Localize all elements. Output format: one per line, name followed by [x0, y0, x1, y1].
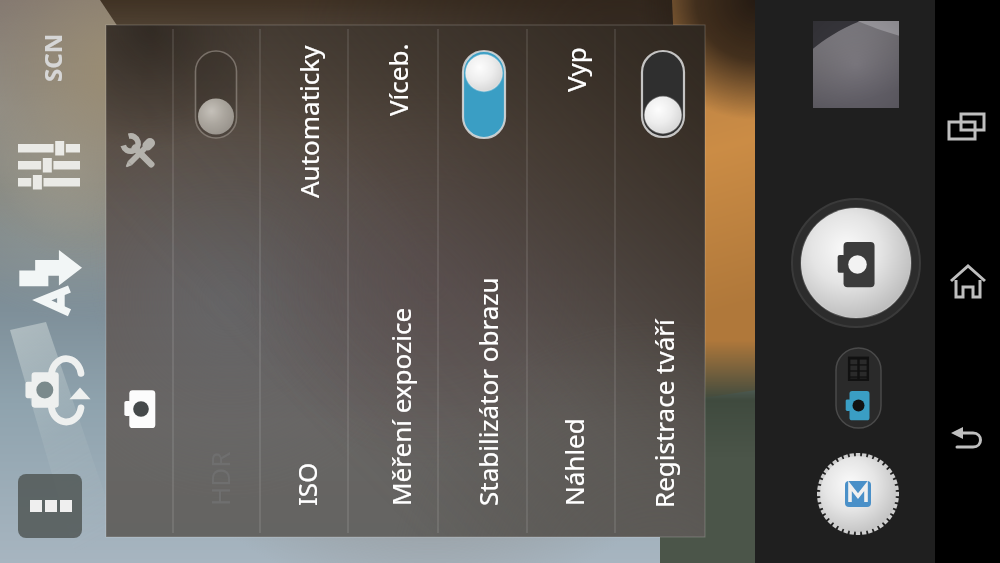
button[interactable]: Flash auto — [18, 248, 84, 314]
button[interactable]: Face registration — [615, 25, 705, 537]
staticText: ISO — [289, 462, 324, 506]
button[interactable]: Settings — [18, 139, 80, 201]
button[interactable]: Shutter — [790, 197, 922, 329]
button[interactable]: Back — [936, 408, 998, 470]
button[interactable]: ISO — [260, 25, 348, 537]
button[interactable]: Scene mode — [14, 26, 90, 88]
staticText: Vyp — [558, 47, 593, 92]
button[interactable]: Camera mode switch — [836, 348, 881, 428]
staticText: Automaticky — [291, 45, 326, 198]
button[interactable]: Home — [937, 251, 999, 313]
button[interactable]: Switch camera — [20, 356, 88, 424]
staticText: Registrace tváří — [646, 319, 681, 508]
button[interactable]: Recent apps — [936, 95, 998, 157]
staticText: Stabilizátor obrazu — [470, 277, 505, 506]
staticText: Měření expozice — [383, 307, 418, 506]
button[interactable]: Metering — [348, 25, 438, 537]
button[interactable]: Settings — [106, 25, 173, 537]
button[interactable]: HDR — [173, 25, 260, 537]
staticText: SCN — [36, 33, 69, 82]
staticText: Náhled — [556, 418, 591, 506]
button[interactable]: Shooting mode — [817, 453, 899, 535]
button[interactable]: Last photo — [813, 21, 899, 108]
button[interactable]: More options — [18, 474, 82, 538]
staticText: HDR — [202, 451, 237, 506]
button[interactable]: Image stabiliser — [438, 25, 527, 537]
staticText: Víceb. — [380, 43, 415, 116]
button[interactable]: Preview — [527, 25, 615, 537]
